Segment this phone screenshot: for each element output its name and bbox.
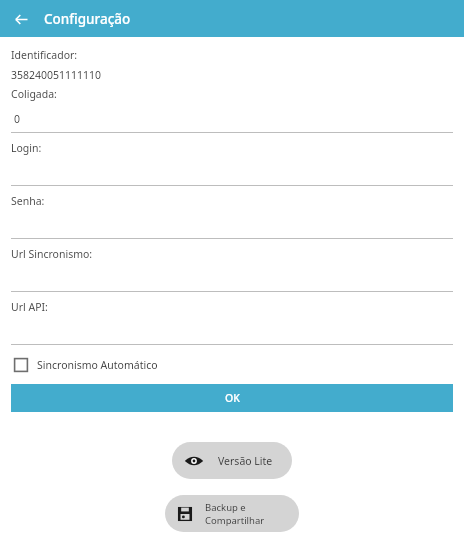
button[interactable]: Back <box>8 6 34 32</box>
button[interactable]: Sincronismo Automático <box>11 352 453 378</box>
button[interactable]: Backup e Compartilhar <box>165 495 299 532</box>
button[interactable]: Versão Lite <box>172 442 292 479</box>
staticText: Backup e Compartilhar <box>205 501 299 527</box>
staticText: Login: <box>11 141 42 155</box>
staticText: Identificador: <box>11 48 78 62</box>
staticText: 358240051111110 <box>11 68 102 82</box>
staticText: Url API: <box>11 300 48 314</box>
staticText: 0 <box>14 112 21 126</box>
staticText: Sincronismo Automático <box>37 358 158 372</box>
staticText: OK <box>225 391 240 405</box>
staticText: Url Sincronismo: <box>11 247 93 261</box>
staticText: Configuração <box>44 10 131 28</box>
staticText: Senha: <box>11 194 45 208</box>
staticText: Versão Lite <box>218 454 273 468</box>
staticText: Coligada: <box>11 87 57 101</box>
button[interactable]: OK <box>11 384 453 412</box>
